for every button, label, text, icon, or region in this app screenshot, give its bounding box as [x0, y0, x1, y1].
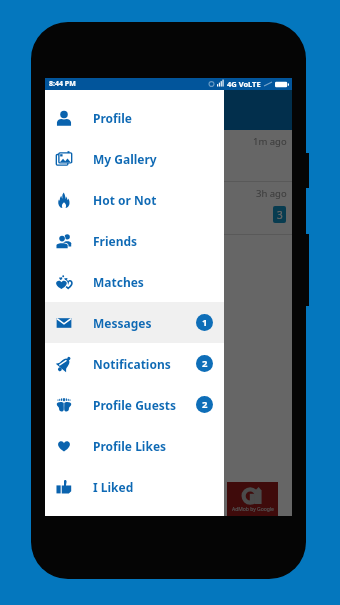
button[interactable]: My Gallery: [45, 138, 224, 179]
staticText: 2: [202, 398, 208, 411]
staticText: 3: [277, 208, 283, 222]
staticText: Profile: [93, 110, 133, 126]
staticText: Profile Guests: [93, 397, 177, 413]
staticText: Matches: [93, 274, 144, 290]
staticText: Profile Likes: [93, 438, 167, 454]
button[interactable]: Profile: [45, 97, 224, 138]
staticText: Notifications: [93, 356, 171, 372]
staticText: My Gallery: [93, 151, 157, 167]
button[interactable]: Friends: [45, 220, 224, 261]
staticText: AdMob by Google: [232, 506, 274, 513]
button[interactable]: Messages: [45, 302, 224, 343]
staticText: Friends: [93, 233, 138, 249]
button[interactable]: Profile Guests: [45, 384, 224, 425]
button[interactable]: Notifications: [45, 343, 224, 384]
staticText: I Liked: [93, 479, 134, 495]
staticText: 1m ago: [253, 135, 287, 148]
staticText: 3h ago: [256, 187, 287, 200]
staticText: 2: [202, 357, 208, 370]
button[interactable]: Profile Likes: [45, 425, 224, 466]
staticText: Messages: [93, 315, 152, 331]
button[interactable]: Hot or Not: [45, 179, 224, 220]
button[interactable]: I Liked: [45, 466, 224, 507]
staticText: Hot or Not: [93, 192, 157, 208]
staticText: 4G VoLTE: [227, 79, 261, 89]
button[interactable]: Matches: [45, 261, 224, 302]
staticText: 1: [202, 316, 208, 329]
staticText: 8:44 PM: [49, 79, 76, 89]
